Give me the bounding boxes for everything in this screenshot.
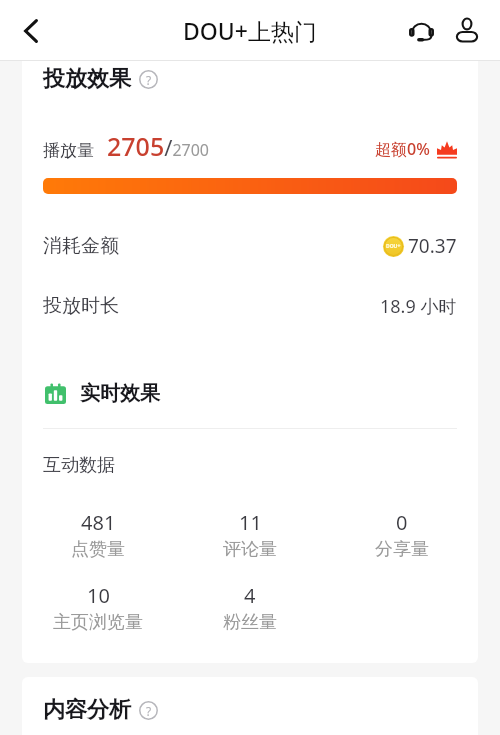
staticText: 主页浏览量 <box>53 611 143 634</box>
staticText: DOU+上热门 <box>183 15 317 46</box>
staticText: 实时效果 <box>80 381 160 406</box>
button[interactable]: 实时效果 <box>45 381 160 406</box>
button[interactable]: 内容分析 <box>43 696 158 724</box>
button[interactable]: 11 <box>174 509 326 561</box>
staticText: 投放效果 <box>43 65 131 93</box>
button[interactable]: 投放效果 <box>43 65 158 93</box>
staticText: 播放量 <box>43 140 94 161</box>
staticText: 481 <box>81 509 116 536</box>
staticText: ? <box>146 72 152 88</box>
staticText: 10 <box>87 582 110 609</box>
button[interactable]: 481 <box>22 509 174 561</box>
staticText: 消耗金额 <box>43 234 119 258</box>
staticText: 互动数据 <box>43 454 115 477</box>
staticText: 18.9 小时 <box>380 294 457 319</box>
staticText: 内容分析 <box>43 696 131 724</box>
button[interactable]: 4 <box>174 582 326 634</box>
staticText: 分享量 <box>375 538 429 561</box>
staticText: 11 <box>239 509 262 536</box>
button[interactable]: Back <box>10 10 52 52</box>
staticText: ? <box>146 703 152 719</box>
staticText: DOU+ <box>386 243 401 250</box>
staticText: 4 <box>244 582 256 609</box>
button[interactable]: Profile <box>446 9 488 51</box>
staticText: 投放时长 <box>43 294 119 318</box>
staticText: 评论量 <box>223 538 277 561</box>
button[interactable]: Customer service <box>400 9 442 51</box>
staticText: 70.37 <box>408 233 457 259</box>
button[interactable]: 10 <box>22 582 174 634</box>
staticText: 0 <box>396 509 408 536</box>
staticText: 2705/2700 <box>107 129 209 163</box>
staticText: 点赞量 <box>71 538 125 561</box>
button[interactable]: 0 <box>326 509 478 561</box>
staticText: 超额0% <box>375 138 430 160</box>
staticText: 粉丝量 <box>223 611 277 634</box>
